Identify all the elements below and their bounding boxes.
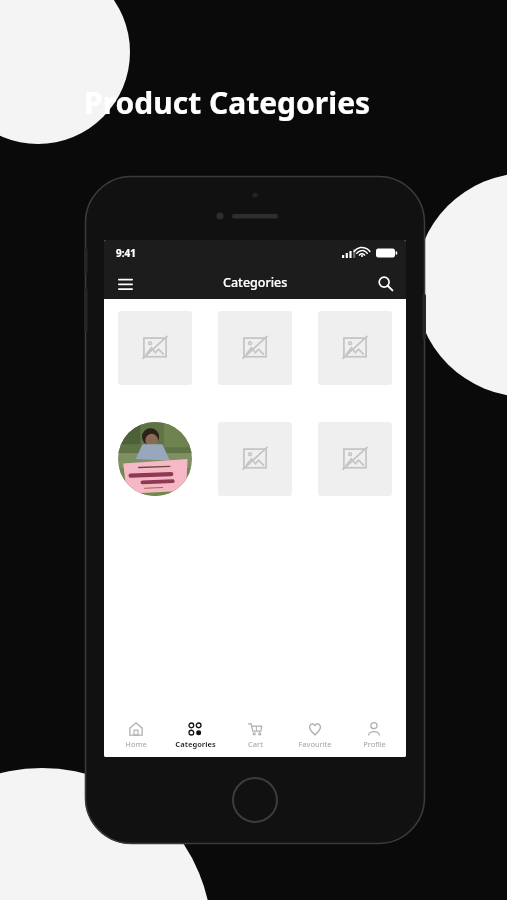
staticText: Cart bbox=[248, 739, 263, 749]
staticText: Categories bbox=[175, 739, 216, 749]
button[interactable]: Category bbox=[118, 311, 192, 385]
button[interactable]: Category bbox=[218, 311, 292, 385]
staticText: Categories bbox=[223, 274, 288, 291]
button[interactable]: Search bbox=[372, 270, 398, 296]
button[interactable]: Favourite bbox=[287, 718, 343, 753]
button[interactable]: Categories bbox=[167, 718, 223, 753]
button[interactable]: Category bbox=[218, 422, 292, 496]
button[interactable]: Menu bbox=[112, 270, 138, 296]
staticText: Favourite bbox=[298, 739, 332, 749]
staticText: Profile bbox=[363, 739, 386, 749]
button[interactable]: Cart bbox=[227, 718, 283, 753]
button[interactable]: Wedding category bbox=[118, 422, 192, 496]
staticText: Product Categories bbox=[84, 82, 371, 123]
button[interactable]: Category bbox=[318, 422, 392, 496]
staticText: Home bbox=[125, 739, 147, 749]
button[interactable]: Home bbox=[108, 718, 164, 753]
button[interactable]: Category bbox=[318, 311, 392, 385]
button[interactable]: Profile bbox=[346, 718, 402, 753]
staticText: 9:41 bbox=[116, 246, 136, 260]
